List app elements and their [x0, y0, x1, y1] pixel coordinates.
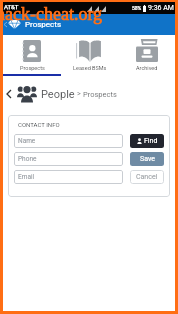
staticText: AT&T: [4, 3, 19, 10]
button[interactable]: Find: [130, 134, 164, 148]
staticText: CONTACT INFO: [18, 121, 60, 128]
button[interactable]: Archived: [118, 35, 175, 76]
staticText: Leased BSMs: [73, 65, 107, 71]
staticText: 9:36 AM: [148, 4, 174, 12]
button[interactable]: Back: [5, 85, 13, 103]
button[interactable]: Email: [14, 170, 123, 184]
staticText: Archived: [136, 65, 158, 71]
staticText: Cancel: [136, 173, 158, 181]
staticText: Name: [18, 137, 36, 145]
staticText: hack-cheat.org: [0, 4, 103, 24]
button[interactable]: Name: [14, 134, 123, 148]
staticText: Find: [144, 137, 158, 145]
button[interactable]: Cancel: [130, 170, 164, 184]
staticText: 58%: [132, 5, 142, 11]
staticText: Prospects: [25, 20, 62, 29]
staticText: Prospects: [20, 65, 45, 71]
button[interactable]: Leased BSMs: [61, 35, 118, 76]
staticText: Prospects: [83, 90, 117, 99]
staticText: Phone: [18, 155, 37, 163]
button[interactable]: Phone: [14, 152, 123, 166]
staticText: Save: [140, 155, 155, 163]
staticText: Email: [18, 173, 35, 181]
staticText: People: [41, 88, 75, 101]
button[interactable]: Save: [130, 152, 164, 166]
button[interactable]: Prospects: [3, 35, 61, 76]
staticText: >: [77, 90, 81, 98]
button[interactable]: Back: [3, 14, 8, 35]
